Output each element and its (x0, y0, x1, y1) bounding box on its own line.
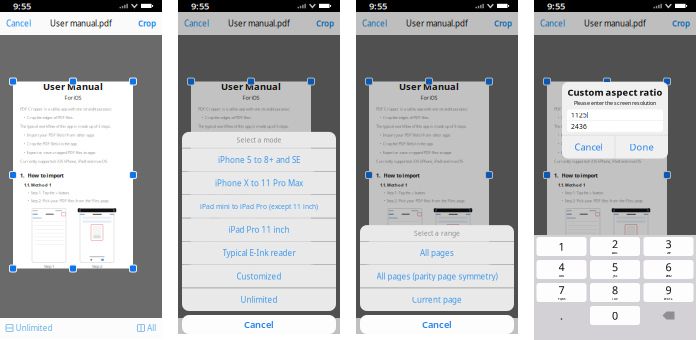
button[interactable]: Crop (672, 13, 696, 34)
button[interactable]: Delete (643, 306, 693, 325)
button[interactable]: 3 (643, 237, 693, 256)
staticText: Cancel (422, 318, 452, 331)
button[interactable]: Unlimited (182, 288, 336, 311)
staticText: PQRS (558, 297, 565, 301)
staticText: Crop the PDF file(s) in the app (560, 141, 610, 146)
staticText: User manual.pdf (584, 18, 646, 29)
button[interactable]: Cancel (182, 315, 336, 334)
button[interactable]: Crop (138, 13, 162, 34)
button[interactable]: All pages (360, 242, 514, 264)
staticText: 0 (612, 308, 618, 323)
staticText: WXYZ (664, 297, 673, 301)
button[interactable]: Unlimited (356, 319, 408, 337)
button[interactable]: 6 (643, 260, 693, 279)
staticText: 2436 (571, 122, 587, 131)
button[interactable]: Cancel (534, 13, 565, 34)
button[interactable]: Cancel (356, 13, 387, 34)
staticText: Done (630, 141, 654, 153)
button[interactable]: Crop (316, 13, 340, 34)
button[interactable]: Unlimited (178, 319, 230, 337)
staticText: 1. (376, 172, 380, 179)
staticText: 6 (665, 260, 671, 274)
button[interactable]: Crop (494, 13, 518, 34)
staticText: Import your PDF file(s) from other apps (382, 132, 450, 138)
staticText: Step 1 (44, 263, 54, 269)
button[interactable]: 4 (536, 260, 586, 279)
staticText: 1.1. Method 1 (380, 182, 407, 188)
staticText: Currently supported: iOS (iPhone, iPad) … (376, 158, 463, 164)
button[interactable]: All (315, 319, 340, 337)
button[interactable]: iPad Pro 11 inch (182, 218, 336, 241)
staticText: Cancel (540, 18, 565, 29)
button[interactable]: Cancel (0, 13, 31, 34)
staticText: For iOS (598, 94, 615, 101)
button[interactable]: 1 (536, 237, 586, 256)
staticText: 9 (665, 283, 671, 297)
button[interactable]: 2 (590, 237, 640, 256)
staticText: Step 2: Pick your PDF files from the Fil… (564, 198, 643, 203)
staticText: The typical workflow of this app is made… (554, 124, 645, 129)
button[interactable]: 5 (590, 260, 640, 279)
staticText: 7 (558, 283, 564, 297)
staticText: PDF Cropper is a utility app with one st… (20, 106, 112, 111)
button[interactable]: . (536, 306, 586, 325)
button[interactable]: Cancel (178, 13, 209, 34)
button[interactable]: 8 (590, 283, 640, 302)
button[interactable]: 7 (536, 283, 586, 302)
staticText: How to import (561, 172, 597, 179)
staticText: 9:55 (13, 0, 31, 12)
staticText: Unlimited (15, 323, 52, 333)
staticText: User manual.pdf (406, 18, 468, 29)
staticText: Step 1: Tap the + button. (386, 190, 425, 195)
staticText: The typical workflow of this app is made… (20, 124, 111, 129)
staticText: Unlimited (240, 294, 277, 305)
button[interactable]: Unlimited (0, 319, 52, 337)
staticText: Cancel (362, 18, 387, 29)
staticText: All pages (parity page symmetry) (376, 271, 497, 282)
button[interactable]: Current page (360, 288, 514, 311)
staticText: Step 1: Tap the + button. (208, 190, 247, 195)
staticText: Crop the PDF file(s) in the app (26, 141, 76, 146)
staticText: Select a mode (236, 135, 281, 144)
button[interactable]: Customized (182, 265, 336, 288)
button[interactable]: 0 (590, 306, 640, 325)
staticText: iPhone 5 to 8+ and SE (218, 154, 300, 165)
staticText: Crop the edges of PDF files. (204, 115, 251, 120)
staticText: Export or save cropped PDF files to apps (26, 150, 95, 155)
button[interactable]: All (493, 319, 518, 337)
button[interactable]: Cancel (360, 315, 514, 334)
staticText: iPhone X to 11 Pro Max (215, 178, 303, 188)
staticText: All (503, 323, 512, 333)
staticText: Crop (138, 18, 156, 29)
button[interactable]: Unlimited (534, 319, 586, 337)
staticText: Crop (672, 18, 690, 29)
staticText: Step 2 (448, 263, 458, 269)
button[interactable]: iPhone X to 11 Pro Max (182, 172, 336, 194)
staticText: User Manual (221, 80, 281, 93)
staticText: 2 (612, 237, 618, 251)
staticText: ABC (612, 251, 618, 255)
staticText: Import your PDF file(s) from other apps (26, 132, 94, 138)
staticText: For iOS (64, 94, 81, 101)
staticText: Current page (412, 294, 462, 305)
staticText: Customized (236, 271, 281, 282)
staticText: JKL (613, 274, 617, 278)
staticText: User Manual (399, 80, 459, 93)
button[interactable]: Typical E-Ink reader (182, 242, 336, 264)
button[interactable]: 9 (643, 283, 693, 302)
staticText: Currently supported: iOS (iPhone, iPad) … (198, 158, 285, 164)
button[interactable]: All pages (parity page symmetry) (360, 265, 514, 288)
staticText: Export or save cropped PDF files to apps (560, 150, 629, 155)
button[interactable]: All (137, 319, 162, 337)
staticText: Cancel (184, 18, 209, 29)
staticText: Step 2: Pick your PDF files from the Fil… (30, 198, 109, 203)
button[interactable]: iPhone 5 to 8+ and SE (182, 148, 336, 171)
button[interactable]: Cancel (562, 141, 615, 153)
button[interactable]: Done (615, 141, 668, 153)
staticText: Crop the PDF file(s) in the app (382, 141, 432, 146)
staticText: GHI (559, 274, 564, 278)
button[interactable]: iPad mini to iPad Pro (except 11 inch) (182, 195, 336, 218)
